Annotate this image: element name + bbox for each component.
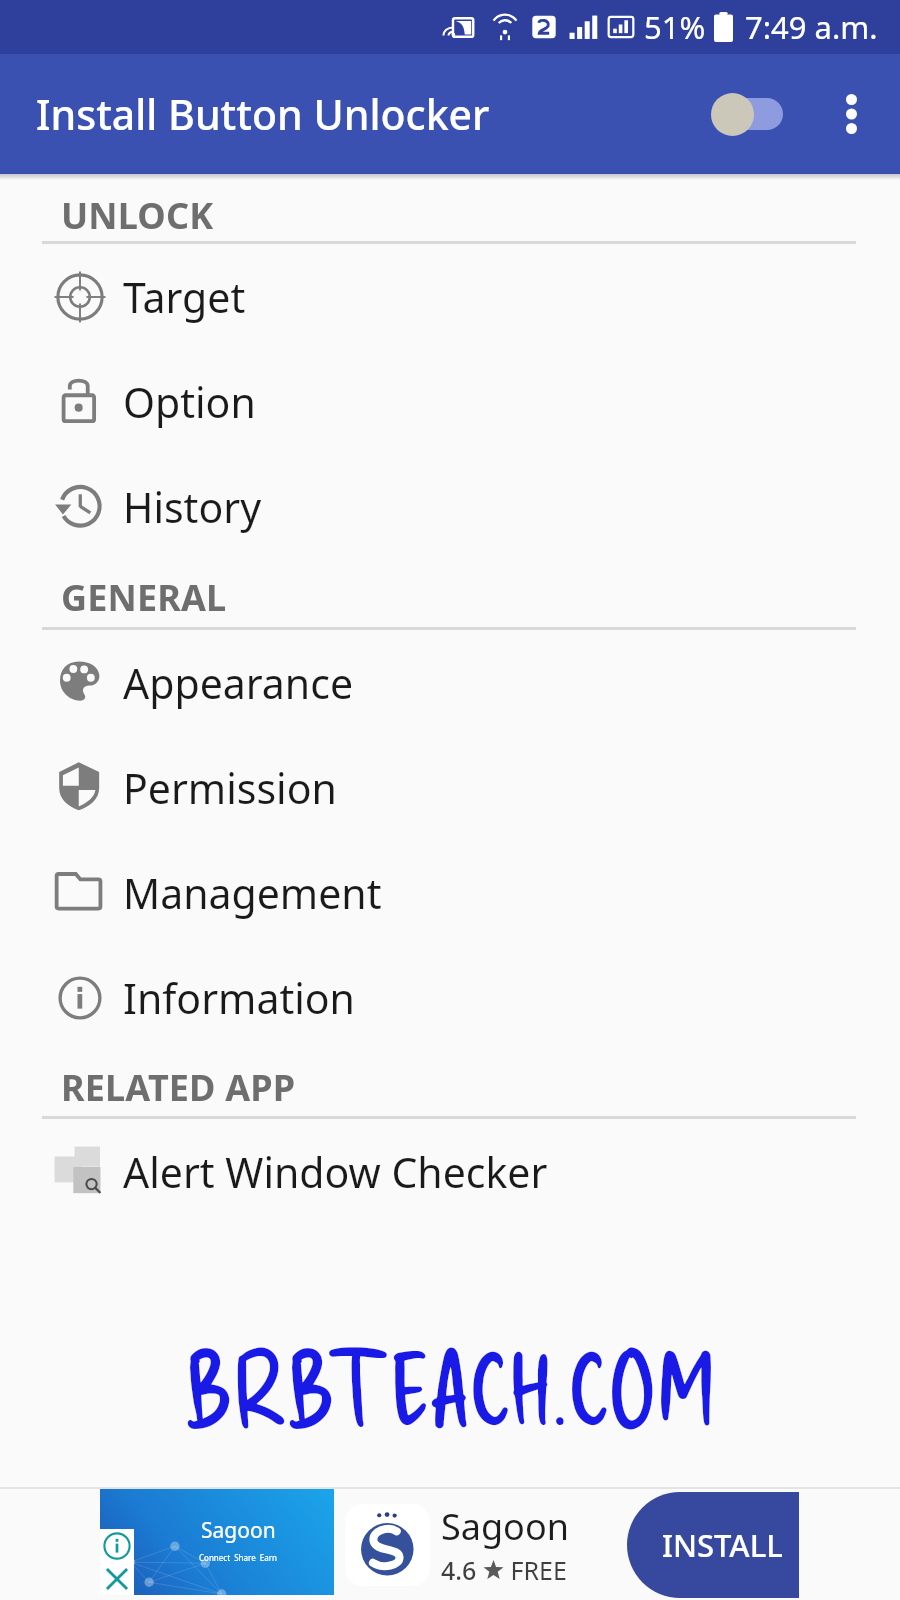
button[interactable]: Appearance <box>0 630 900 735</box>
staticText: Connect Share Earn <box>199 1552 278 1563</box>
button[interactable]: More options <box>829 78 873 150</box>
staticText: Sagoon <box>441 1502 569 1551</box>
staticText: BRBTEACH.COM <box>184 1328 716 1448</box>
button[interactable]: Permission <box>0 735 900 840</box>
staticText: INSTALL <box>662 1524 783 1566</box>
button[interactable]: Information <box>0 945 900 1050</box>
staticText: History <box>123 479 262 535</box>
button[interactable]: Management <box>0 840 900 945</box>
staticText: Information <box>123 970 355 1026</box>
button[interactable]: Option <box>0 349 900 454</box>
button[interactable]: Ad info <box>100 1529 134 1563</box>
staticText: Sagoon <box>201 1516 276 1545</box>
staticText: GENERAL <box>61 573 227 622</box>
staticText: FREE <box>504 1553 567 1587</box>
staticText: Option <box>123 374 256 430</box>
staticText: Alert Window Checker <box>123 1144 548 1200</box>
staticText: 4.6 <box>441 1553 483 1587</box>
staticText: UNLOCK <box>61 191 214 240</box>
staticText: Target <box>123 269 246 325</box>
button[interactable]: Alert Window Checker <box>0 1119 900 1224</box>
button[interactable]: Target <box>0 244 900 349</box>
button[interactable]: Sagoon ad <box>100 1489 334 1595</box>
staticText: RELATED APP <box>61 1063 296 1112</box>
button[interactable]: INSTALL <box>627 1492 799 1598</box>
staticText: Install Button Unlocker <box>36 86 490 142</box>
button[interactable]: Close ad <box>100 1563 134 1595</box>
staticText: 7:49 a.m. <box>745 6 878 48</box>
staticText: 51% <box>644 6 706 48</box>
button[interactable]: Enable unlocker <box>709 78 805 150</box>
staticText: Permission <box>123 760 337 816</box>
staticText: Appearance <box>123 655 354 711</box>
button[interactable]: History <box>0 454 900 559</box>
staticText: Management <box>123 865 382 921</box>
button[interactable]: Sagoon app icon <box>345 1504 430 1586</box>
